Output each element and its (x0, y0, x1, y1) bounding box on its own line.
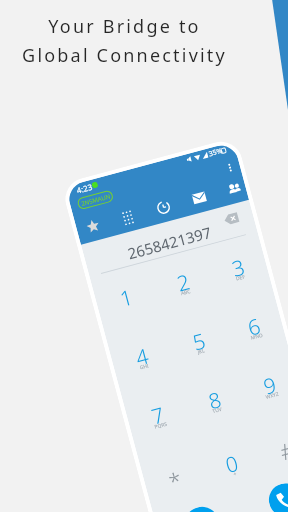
staticText: GHI (139, 362, 150, 371)
staticText: DEF (235, 273, 247, 282)
staticText: Global Connectivity (22, 43, 227, 68)
button[interactable]: Dialpad (108, 198, 147, 235)
button[interactable]: Recents (144, 188, 182, 226)
staticText: 6 (245, 312, 264, 343)
staticText: 1 (117, 283, 136, 314)
button[interactable]: Favorites (73, 207, 112, 245)
staticText: 2658421397 (125, 222, 213, 263)
button[interactable]: 6 (221, 298, 288, 359)
button[interactable]: Call (265, 480, 288, 512)
staticText: 0 (222, 449, 241, 480)
button[interactable]: 0 (199, 436, 266, 496)
staticText: 9 (260, 370, 279, 402)
button[interactable]: Video call (180, 503, 223, 512)
staticText: 3 (229, 253, 248, 284)
button[interactable]: 8 (182, 372, 248, 433)
staticText: TUV (212, 406, 223, 415)
staticText: PQRS (154, 420, 168, 431)
button[interactable]: * (142, 451, 209, 512)
button[interactable]: 2 (150, 254, 217, 315)
staticText: 35% (208, 146, 224, 159)
staticText: JKL (197, 347, 206, 356)
staticText: 2N5MAUN (80, 192, 111, 208)
button[interactable]: # (254, 421, 288, 482)
button[interactable]: 3 (205, 239, 272, 300)
staticText: 4 (132, 342, 152, 373)
button[interactable]: 9 (237, 357, 288, 418)
button[interactable]: 1 (93, 269, 160, 330)
staticText: + (233, 470, 237, 478)
staticText: 8 (205, 385, 224, 416)
button[interactable]: 5 (166, 313, 233, 374)
staticText: 7 (148, 400, 167, 432)
staticText: WXYZ (265, 390, 280, 401)
staticText: 5 (189, 326, 209, 357)
button[interactable]: Messages (179, 179, 218, 216)
staticText: * (165, 464, 186, 496)
staticText: # (276, 434, 288, 467)
staticText: ABC (180, 288, 192, 297)
button[interactable]: 2N5MAUN (77, 190, 114, 210)
staticText: 2 (174, 267, 193, 298)
button[interactable]: 7 (125, 387, 191, 448)
staticText: MNO (250, 332, 264, 342)
button[interactable]: More options (227, 163, 233, 172)
button[interactable]: Backspace (223, 212, 239, 225)
button[interactable]: Contacts (214, 171, 249, 207)
staticText: Your Bridge to (48, 14, 201, 39)
button[interactable]: 4 (109, 328, 176, 389)
staticText: 4:23 (75, 181, 93, 195)
